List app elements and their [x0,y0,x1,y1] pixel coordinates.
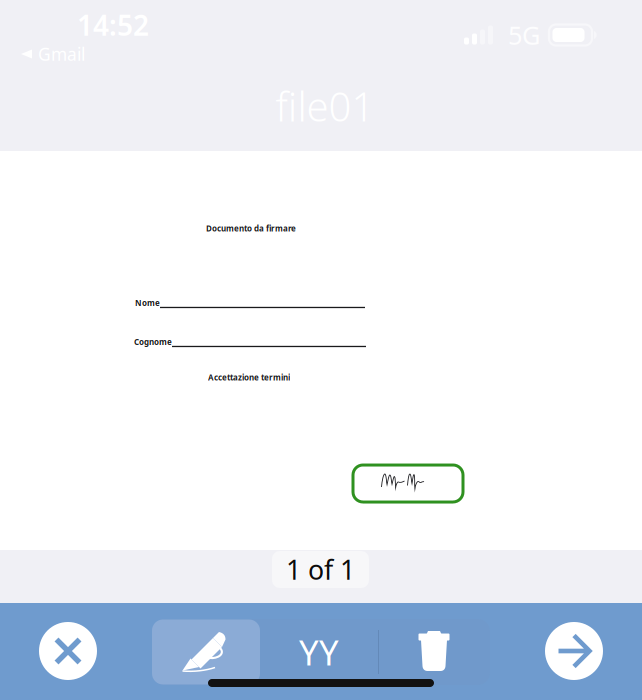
button[interactable]: Gmail [0,40,95,68]
button[interactable]: YY [260,619,378,685]
button[interactable]: Close [39,622,97,680]
button[interactable]: Next [545,622,603,680]
staticText: file01 [275,79,374,132]
staticText: Nome [135,297,160,308]
staticText: 1 of 1 [286,552,355,587]
staticText: Documento da firmare [206,223,296,234]
staticText: 14:52 [77,6,149,44]
button[interactable]: Draw [152,619,260,685]
staticText: Accettazione termini [208,372,290,383]
staticText: YY [299,629,339,675]
button[interactable]: Signature [353,465,463,502]
staticText: 5G [508,18,540,52]
staticText: Cognome [134,336,172,347]
button[interactable]: Delete [378,619,490,685]
staticText: Gmail [38,42,85,65]
